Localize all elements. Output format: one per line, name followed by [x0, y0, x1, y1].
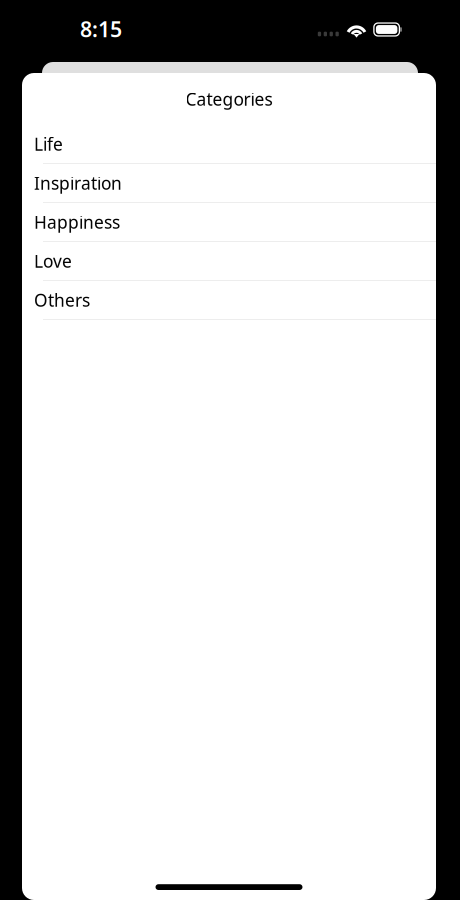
staticText: Love — [34, 249, 72, 272]
button[interactable]: Happiness — [22, 203, 436, 242]
button[interactable]: Life — [22, 125, 436, 164]
staticText: Categories — [185, 87, 272, 110]
staticText: Life — [34, 132, 63, 155]
button[interactable]: Love — [22, 242, 436, 281]
staticText: 8:15 — [80, 15, 122, 43]
staticText: Inspiration — [34, 171, 122, 194]
staticText: Others — [34, 288, 90, 311]
staticText: Happiness — [34, 210, 120, 233]
button[interactable]: Inspiration — [22, 164, 436, 203]
button[interactable]: Others — [22, 281, 436, 320]
